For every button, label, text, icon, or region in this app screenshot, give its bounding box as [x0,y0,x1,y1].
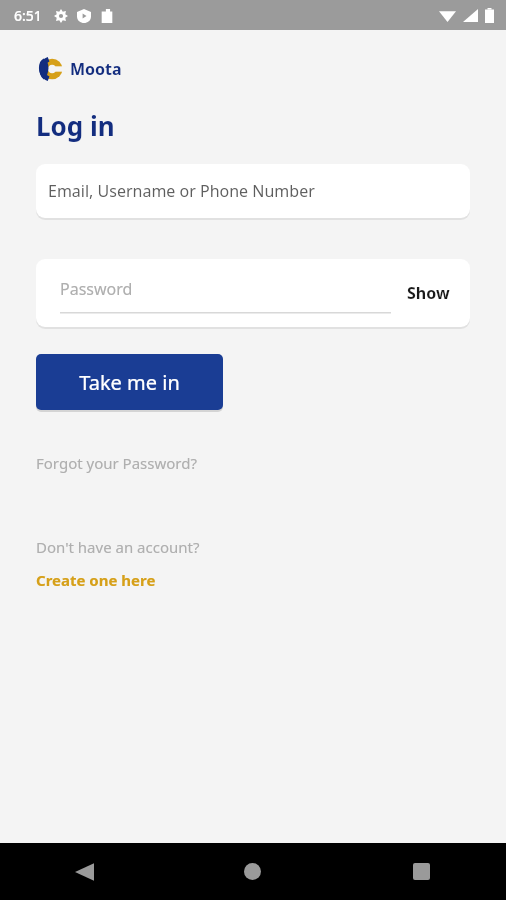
button[interactable]: Back [0,843,168,900]
staticText: Show [407,282,450,304]
button[interactable]: Password [60,267,391,319]
button[interactable]: Show [405,276,452,310]
button[interactable]: Home [168,843,337,900]
staticText: Email, Username or Phone Number [48,180,315,202]
staticText: Moota [70,58,122,80]
button[interactable]: Recent apps [337,843,506,900]
staticText: Password [60,278,133,300]
staticText: Forgot your Password? [36,453,197,473]
staticText: 6:51 [14,6,42,25]
button[interactable]: Forgot your Password? [36,453,197,473]
button[interactable]: Email, Username or Phone Number [36,164,470,218]
button[interactable]: Create one here [36,570,156,590]
staticText: Don't have an account? [36,537,200,557]
staticText: Create one here [36,570,156,590]
staticText: Take me in [79,369,180,396]
button[interactable]: Take me in [36,354,223,410]
staticText: Log in [36,108,115,143]
